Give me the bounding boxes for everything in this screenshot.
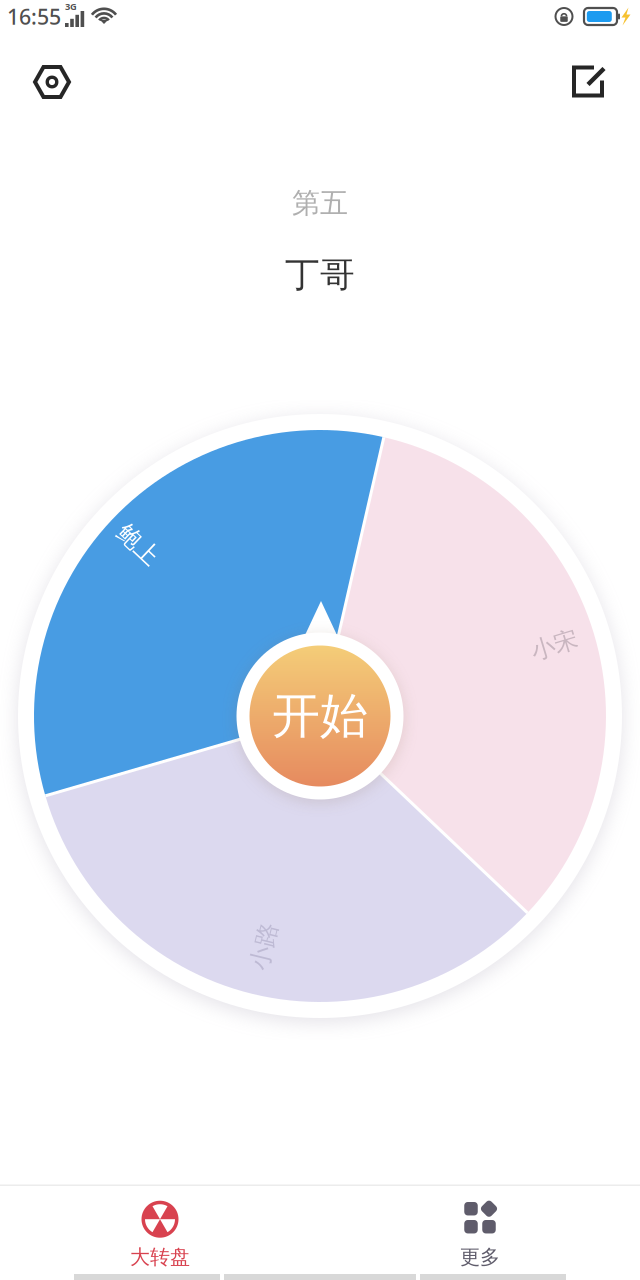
staticText: 更多: [460, 1245, 500, 1269]
staticText: 开始: [272, 686, 368, 745]
staticText: 第五: [292, 186, 348, 220]
button[interactable]: 更多: [320, 1180, 640, 1275]
button[interactable]: 开始: [236, 632, 403, 799]
button[interactable]: 大转盘: [0, 1180, 320, 1275]
staticText: 3G: [65, 0, 77, 12]
staticText: 鲍上: [114, 530, 162, 559]
button[interactable]: Settings: [17, 51, 87, 113]
button[interactable]: Compose: [556, 51, 622, 112]
staticText: 大转盘: [130, 1245, 190, 1269]
staticText: 16:55: [7, 2, 61, 31]
staticText: 小路: [240, 932, 288, 961]
staticText: 小宋: [530, 630, 578, 660]
staticText: 丁哥: [285, 253, 355, 296]
